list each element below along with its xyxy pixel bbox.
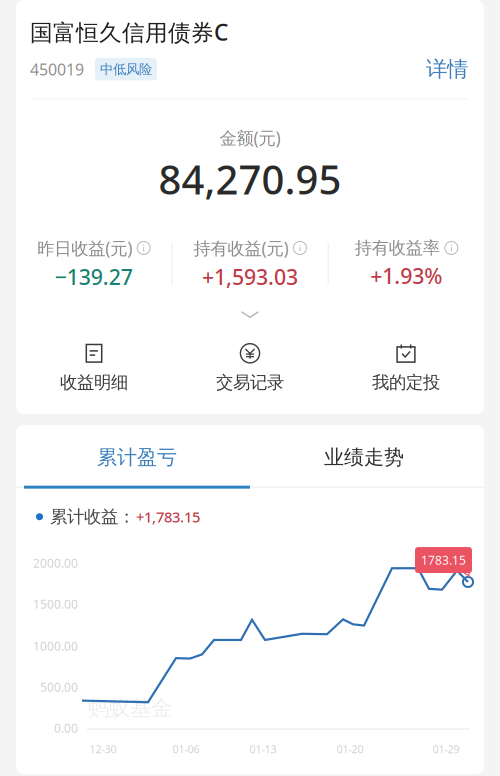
staticText: 01-20 — [336, 742, 363, 756]
button[interactable]: 累计盈亏 — [16, 425, 250, 486]
staticText: 1500.00 — [33, 596, 78, 612]
button[interactable]: 交易记录 — [172, 344, 328, 393]
staticText: 01-13 — [249, 742, 276, 756]
staticText: 1000.00 — [33, 638, 78, 654]
staticText: 交易记录 — [216, 372, 284, 393]
staticText: 01-29 — [432, 742, 459, 756]
staticText: 450019 — [30, 59, 84, 80]
button[interactable]: 业绩走势 — [250, 425, 484, 486]
staticText: +1,783.15 — [136, 507, 200, 526]
button[interactable]: 收益明细 — [16, 344, 172, 393]
staticText: 2000.00 — [33, 555, 78, 571]
staticText: 金额(元) — [219, 126, 280, 149]
staticText: 12-30 — [89, 742, 116, 756]
button[interactable]: 详情 — [415, 51, 479, 87]
staticText: 收益明细 — [60, 372, 128, 393]
staticText: 业绩走势 — [324, 445, 404, 470]
staticText: 累计收益： — [50, 506, 135, 527]
staticText: 国富恒久信用债券C — [30, 17, 228, 47]
staticText: +1.93% — [370, 262, 442, 290]
staticText: 昨日收益(元) — [37, 236, 132, 259]
staticText: 持有收益率 — [355, 237, 440, 259]
staticText: 500.00 — [40, 679, 78, 695]
staticText: 详情 — [426, 56, 468, 82]
staticText: 中低风险 — [100, 61, 152, 77]
staticText: 0.00 — [54, 720, 78, 736]
staticText: 蚂蚁基金 — [88, 695, 172, 721]
staticText: +1,593.03 — [202, 262, 298, 291]
staticText: −139.27 — [55, 262, 133, 291]
staticText: 84,270.95 — [158, 152, 341, 205]
staticText: 1783.15 — [421, 552, 466, 568]
staticText: 累计盈亏 — [97, 445, 177, 470]
staticText: 01-06 — [172, 742, 199, 756]
button[interactable]: 我的定投 — [328, 344, 484, 393]
staticText: 持有收益(元) — [193, 236, 288, 259]
staticText: 我的定投 — [372, 372, 440, 393]
